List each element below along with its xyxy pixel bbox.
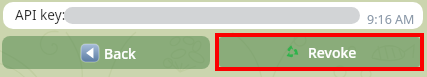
staticText: Revoke	[308, 43, 357, 62]
button[interactable]: Revoke	[215, 33, 424, 71]
staticText: API key:	[15, 5, 66, 24]
button[interactable]: Back	[2, 36, 210, 69]
staticText: Back	[104, 44, 136, 63]
staticText: 9:16 AM	[367, 11, 415, 28]
